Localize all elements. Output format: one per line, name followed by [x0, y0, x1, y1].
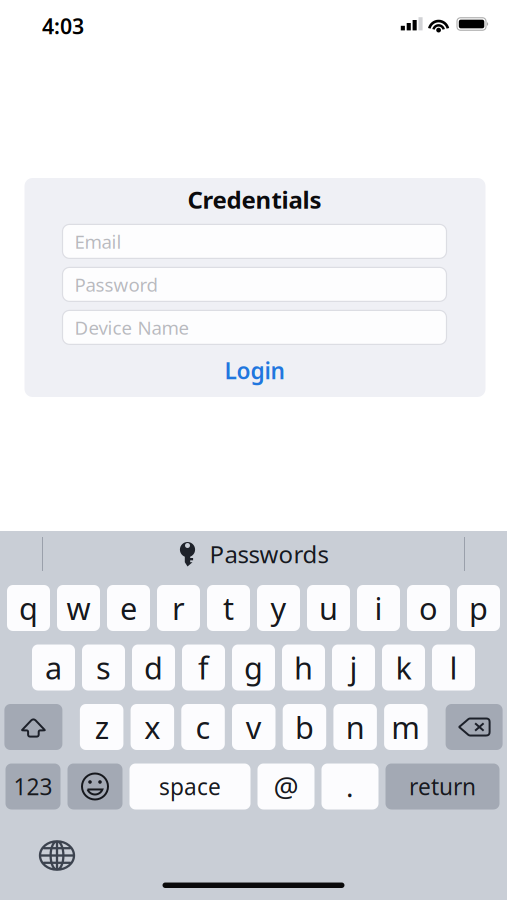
staticText: space	[159, 771, 221, 801]
staticText: Credentials	[187, 183, 321, 215]
button[interactable]: i	[357, 585, 400, 631]
button[interactable]: s	[82, 644, 125, 690]
staticText: x	[144, 707, 160, 747]
staticText: i	[374, 588, 382, 628]
staticText: @	[273, 768, 298, 805]
staticText: q	[19, 588, 38, 628]
button[interactable]: v	[232, 704, 275, 750]
staticText: Device Name	[74, 315, 189, 340]
staticText: 4:03	[42, 12, 84, 40]
button[interactable]: Login	[62, 344, 446, 405]
button[interactable]: @	[257, 763, 314, 809]
button[interactable]: f	[182, 644, 225, 690]
button[interactable]: h	[282, 644, 325, 690]
button[interactable]: Password	[62, 267, 446, 301]
staticText: c	[196, 707, 211, 747]
button[interactable]: z	[80, 704, 123, 750]
staticText: Passwords	[209, 538, 328, 570]
button[interactable]: k	[382, 644, 425, 690]
button[interactable]: Emoji	[67, 763, 122, 809]
staticText: g	[244, 647, 263, 688]
button[interactable]: c	[181, 704, 225, 750]
staticText: v	[246, 707, 262, 747]
button[interactable]: Email	[62, 224, 446, 258]
staticText: 123	[13, 771, 52, 801]
staticText: Login	[224, 355, 284, 385]
staticText: return	[409, 771, 476, 801]
staticText: y	[270, 588, 286, 628]
button[interactable]: t	[207, 585, 250, 631]
button[interactable]: return	[385, 763, 499, 809]
button[interactable]: Device Name	[62, 310, 446, 344]
button[interactable]: Shift	[4, 704, 62, 750]
staticText: a	[45, 647, 62, 688]
button[interactable]: l	[432, 644, 475, 690]
button[interactable]: space	[129, 763, 250, 809]
button[interactable]: .	[321, 763, 378, 809]
staticText: n	[346, 707, 365, 747]
staticText: Password	[74, 272, 157, 297]
button[interactable]: m	[384, 704, 428, 750]
staticText: .	[346, 768, 354, 805]
staticText: h	[294, 647, 313, 688]
staticText: b	[295, 707, 314, 747]
button[interactable]: e	[107, 585, 150, 631]
button[interactable]: Passwords	[178, 538, 328, 570]
button[interactable]: j	[332, 644, 375, 690]
button[interactable]: u	[307, 585, 350, 631]
button[interactable]: w	[57, 585, 100, 631]
staticText: j	[349, 647, 357, 688]
button[interactable]: g	[232, 644, 275, 690]
staticText: z	[95, 707, 109, 747]
staticText: o	[419, 588, 438, 628]
button[interactable]: n	[333, 704, 377, 750]
staticText: m	[391, 707, 420, 747]
button[interactable]: a	[32, 644, 75, 690]
staticText: Email	[74, 229, 121, 254]
staticText: r	[172, 588, 185, 628]
button[interactable]: o	[407, 585, 450, 631]
staticText: e	[120, 588, 137, 628]
button[interactable]: 123	[5, 763, 60, 809]
staticText: t	[223, 588, 234, 628]
staticText: w	[66, 588, 90, 628]
button[interactable]: b	[283, 704, 326, 750]
staticText: l	[449, 647, 457, 688]
button[interactable]: Delete	[446, 704, 503, 750]
button[interactable]: x	[131, 704, 174, 750]
staticText: k	[395, 647, 411, 688]
button[interactable]: q	[7, 585, 50, 631]
staticText: d	[144, 647, 163, 688]
button[interactable]: y	[257, 585, 300, 631]
button[interactable]: p	[457, 585, 500, 631]
staticText: f	[198, 647, 209, 688]
staticText: p	[469, 588, 488, 628]
button[interactable]: r	[157, 585, 200, 631]
staticText: u	[319, 588, 338, 628]
button[interactable]: Next keyboard	[38, 838, 76, 872]
staticText: s	[96, 647, 111, 688]
button[interactable]: d	[132, 644, 175, 690]
